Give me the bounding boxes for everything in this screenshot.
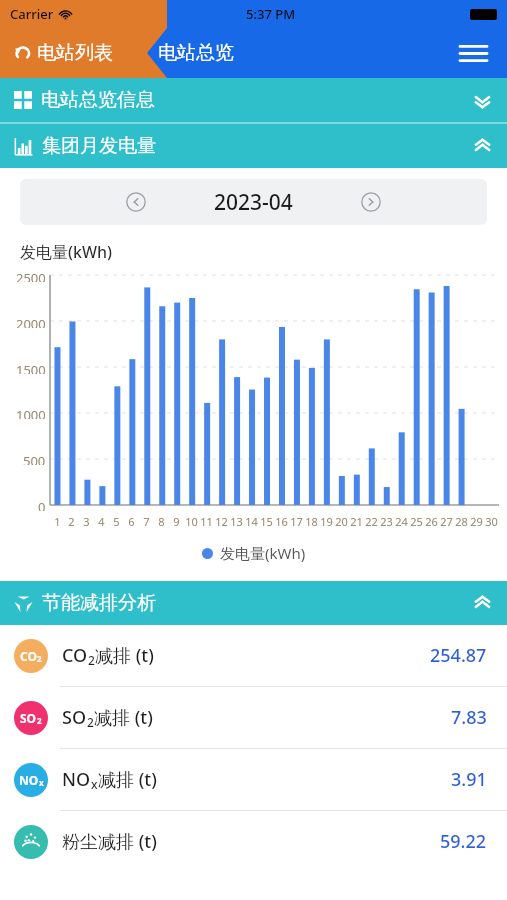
button[interactable]: Menu <box>453 33 493 73</box>
button[interactable]: 电站列表 <box>0 28 150 78</box>
staticText: 2500 <box>16 269 46 282</box>
staticText: 254.87 <box>430 643 487 668</box>
staticText: 2 <box>68 514 75 529</box>
staticText: 17 <box>290 514 303 529</box>
staticText: 2 <box>87 714 94 730</box>
staticText: 1500 <box>16 361 46 374</box>
staticText: 电站列表 <box>37 41 113 65</box>
staticText: 1 <box>54 514 61 529</box>
staticText: 23 <box>380 514 393 529</box>
staticText: 集团月发电量 <box>42 134 156 158</box>
staticText: 粉尘减排 (t) <box>62 829 157 854</box>
staticText: 2 <box>88 652 95 668</box>
button[interactable]: SO <box>0 687 507 748</box>
staticText: 59.22 <box>440 829 487 854</box>
staticText: NO <box>19 772 39 788</box>
staticText: 2023-04 <box>214 188 293 217</box>
button[interactable]: 集团月发电量 <box>0 124 507 168</box>
staticText: 15 <box>260 514 273 529</box>
staticText: 减排 (t) <box>98 767 157 792</box>
staticText: 发电量(kWh) <box>220 543 306 563</box>
staticText: 电站总览信息 <box>41 88 155 112</box>
staticText: 减排 (t) <box>94 705 153 730</box>
button[interactable]: Next month <box>355 186 387 218</box>
staticText: 8 <box>158 514 165 529</box>
staticText: 4 <box>98 514 105 529</box>
staticText: 24 <box>395 514 408 529</box>
staticText: 500 <box>23 452 46 465</box>
staticText: 16 <box>275 514 288 529</box>
staticText: 20 <box>335 514 348 529</box>
staticText: 26 <box>425 514 438 529</box>
staticText: 2000 <box>16 315 46 328</box>
staticText: 发电量(kWh) <box>20 241 113 263</box>
staticText: 5:37 PM <box>246 5 296 23</box>
button[interactable]: NO <box>0 749 507 810</box>
staticText: 14 <box>245 514 258 529</box>
staticText: x <box>91 776 98 792</box>
staticText: 2 <box>37 653 42 664</box>
staticText: 12 <box>215 514 228 529</box>
staticText: 13 <box>230 514 243 529</box>
staticText: NO <box>62 767 91 792</box>
staticText: SO <box>20 710 37 726</box>
staticText: Carrier <box>10 5 54 23</box>
staticText: 7.83 <box>451 705 487 730</box>
staticText: 0 <box>38 498 46 511</box>
staticText: 29 <box>470 514 483 529</box>
staticText: SO <box>62 705 87 730</box>
staticText: 2 <box>37 715 42 726</box>
staticText: 9 <box>173 514 180 529</box>
staticText: 1000 <box>16 406 46 419</box>
button[interactable]: 粉尘减排 (t) <box>0 811 507 872</box>
staticText: 10 <box>185 514 198 529</box>
staticText: 19 <box>320 514 333 529</box>
staticText: CO <box>20 648 37 664</box>
button[interactable]: Previous month <box>120 186 152 218</box>
staticText: 6 <box>128 514 135 529</box>
staticText: 减排 (t) <box>95 643 154 668</box>
staticText: 25 <box>410 514 423 529</box>
staticText: 11 <box>200 514 213 529</box>
button[interactable]: 电站总览信息 <box>0 78 507 122</box>
staticText: 30 <box>485 514 498 529</box>
staticText: 18 <box>305 514 318 529</box>
staticText: 3 <box>83 514 90 529</box>
staticText: 22 <box>365 514 378 529</box>
staticText: 28 <box>455 514 468 529</box>
staticText: 21 <box>350 514 363 529</box>
staticText: 7 <box>143 514 150 529</box>
staticText: 电站总览 <box>158 41 234 65</box>
staticText: 27 <box>440 514 453 529</box>
button[interactable]: 节能减排分析 <box>0 581 507 625</box>
staticText: CO <box>62 643 88 668</box>
staticText: 3.91 <box>451 767 487 792</box>
staticText: 节能减排分析 <box>42 591 156 615</box>
button[interactable]: CO <box>0 625 507 686</box>
staticText: 5 <box>113 514 120 529</box>
staticText: x <box>39 777 44 788</box>
